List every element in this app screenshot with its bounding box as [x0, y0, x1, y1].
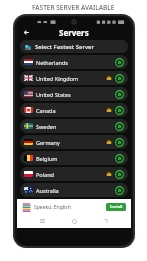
staticText: Australia — [36, 187, 115, 194]
button[interactable]: Canada — [20, 103, 128, 117]
button[interactable]: Back — [21, 27, 32, 38]
button[interactable]: Home — [69, 216, 80, 227]
staticText: Canada — [36, 107, 106, 114]
button[interactable]: Poland — [20, 167, 128, 181]
button[interactable]: Connect — [115, 154, 124, 163]
staticText: Germany — [36, 139, 106, 146]
button[interactable]: Australia — [20, 183, 128, 197]
staticText: Sweden — [36, 123, 115, 130]
button[interactable]: Connect — [115, 74, 124, 83]
button[interactable]: Connect — [115, 186, 124, 195]
button[interactable]: Recents — [37, 216, 48, 227]
button[interactable]: Belgium — [20, 151, 128, 165]
staticText: Install — [110, 204, 123, 210]
staticText: Select Fastest Server — [35, 43, 95, 51]
staticText: Poland — [36, 171, 106, 178]
button[interactable]: Connect — [115, 170, 124, 179]
staticText: United Kingdom — [36, 75, 106, 82]
staticText: Speeko: English — [34, 204, 106, 211]
staticText: Belgium — [36, 155, 115, 162]
button[interactable]: Select Fastest Server — [20, 40, 128, 53]
staticText: United States — [36, 91, 115, 98]
button[interactable]: Netherlands — [20, 55, 128, 69]
button[interactable]: Connect — [115, 90, 124, 99]
button[interactable]: Germany — [20, 135, 128, 149]
button[interactable]: Connect — [115, 106, 124, 115]
button[interactable]: Sweden — [20, 119, 128, 133]
staticText: Netherlands — [36, 59, 115, 66]
button[interactable]: United Kingdom — [20, 71, 128, 85]
button[interactable]: United States — [20, 87, 128, 101]
button[interactable]: Install — [106, 203, 126, 211]
button[interactable]: Back — [100, 216, 111, 227]
button[interactable]: Connect — [115, 122, 124, 131]
staticText: Servers — [59, 27, 89, 38]
button[interactable]: Connect — [115, 138, 124, 147]
staticText: FASTER SERVER AVAILABLE — [32, 3, 115, 12]
button[interactable]: Speeko: English — [17, 199, 131, 215]
button[interactable]: Connect — [115, 58, 124, 67]
